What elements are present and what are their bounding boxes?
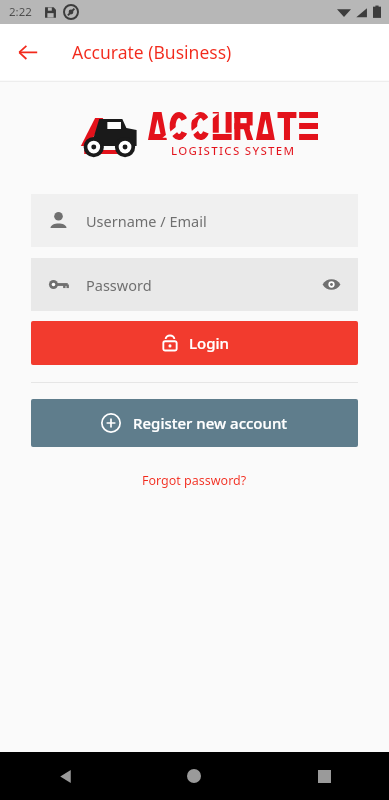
button[interactable]: Back (10, 34, 46, 70)
button[interactable]: Register new account (31, 399, 358, 447)
staticText: LOGISTICS SYSTEM (171, 143, 296, 159)
staticText: Password (86, 275, 152, 295)
staticText: 2:22 (9, 4, 32, 20)
other: Username (48, 210, 69, 231)
staticText: Accurate (Business) (72, 40, 232, 64)
button[interactable]: Username (31, 194, 358, 247)
button[interactable]: Forgot password? (132, 468, 257, 493)
button[interactable]: Password (31, 258, 358, 311)
button[interactable]: Back (42, 753, 88, 799)
button[interactable]: Show password (319, 272, 344, 297)
staticText: Login (189, 333, 229, 353)
other: Password (48, 274, 69, 295)
staticText: Forgot password? (142, 472, 247, 489)
button[interactable]: Login (31, 321, 358, 365)
staticText: Username / Email (86, 211, 207, 231)
staticText: Register new account (133, 413, 288, 433)
button[interactable]: Recent apps (301, 753, 347, 799)
button[interactable]: Home (171, 753, 217, 799)
